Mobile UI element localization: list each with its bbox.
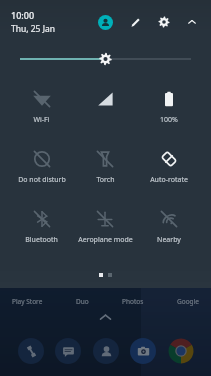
- button[interactable]: Messages: [53, 336, 83, 366]
- staticText: Thu, 25 Jan: [11, 23, 55, 35]
- button[interactable]: Camera: [128, 336, 158, 366]
- staticText: Torch: [96, 175, 115, 185]
- button[interactable]: Nearby: [137, 207, 201, 247]
- staticText: Wi-Fi: [33, 115, 50, 125]
- button[interactable]: Do not disturb: [10, 147, 73, 187]
- staticText: Duo: [76, 297, 89, 306]
- button[interactable]: Edit tiles: [125, 12, 145, 32]
- button[interactable]: Phone: [16, 336, 46, 366]
- staticText: Play Store: [12, 297, 43, 306]
- button[interactable]: Wi-Fi: [10, 87, 73, 127]
- staticText: Nearby: [157, 235, 181, 245]
- staticText: 100%: [160, 115, 178, 125]
- button[interactable]: Mobile signal: [73, 87, 137, 127]
- button[interactable]: Torch: [73, 147, 137, 187]
- button[interactable]: 100%: [137, 87, 201, 127]
- button[interactable]: Brightness: [20, 49, 191, 69]
- button[interactable]: Auto-rotate: [137, 147, 201, 187]
- button[interactable]: Bluetooth: [10, 207, 73, 247]
- staticText: 10:00: [11, 9, 35, 21]
- staticText: Aeroplane mode: [78, 235, 133, 245]
- button[interactable]: Collapse: [182, 12, 202, 32]
- button[interactable]: User: [94, 11, 116, 33]
- button[interactable]: 10:00: [11, 9, 55, 35]
- staticText: Do not disturb: [18, 175, 66, 185]
- button[interactable]: Contacts: [91, 336, 121, 366]
- staticText: Photos: [122, 297, 144, 306]
- staticText: Auto-rotate: [150, 175, 188, 185]
- button[interactable]: Settings: [154, 12, 174, 32]
- staticText: Google: [177, 297, 199, 306]
- button[interactable]: Chrome: [166, 336, 196, 366]
- button[interactable]: Aeroplane mode: [73, 207, 137, 247]
- staticText: Bluetooth: [25, 235, 58, 245]
